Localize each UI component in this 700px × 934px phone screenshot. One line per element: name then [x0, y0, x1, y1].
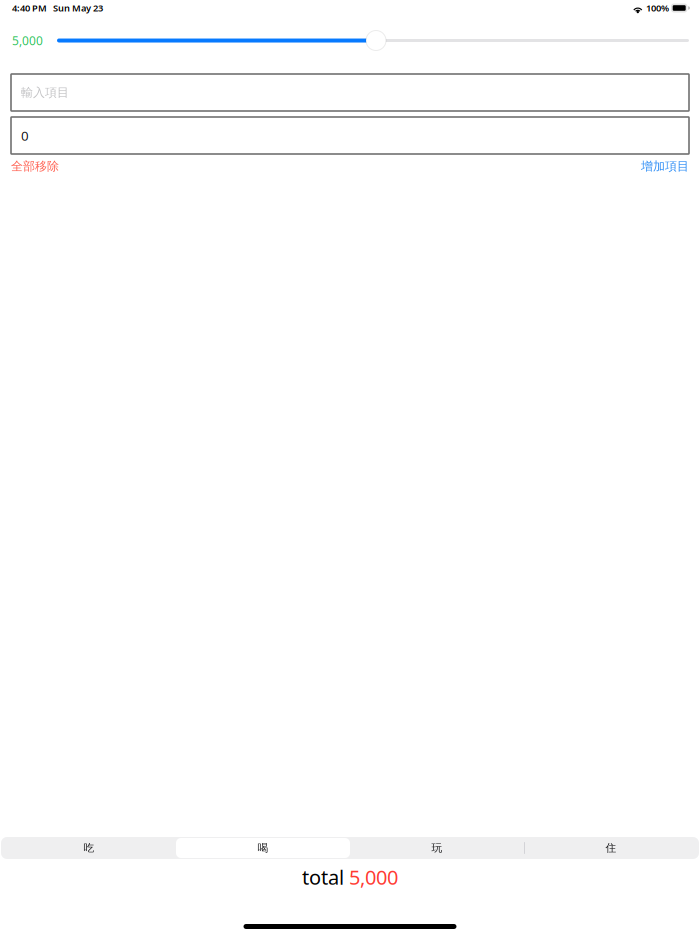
- button[interactable]: 輸入項目: [11, 74, 689, 111]
- staticText: 4:40 PM: [12, 2, 47, 14]
- button[interactable]: 0: [11, 117, 689, 154]
- staticText: 喝: [257, 841, 268, 854]
- staticText: Sun May 23: [53, 2, 103, 14]
- staticText: 5,000: [12, 32, 43, 48]
- staticText: 玩: [431, 841, 442, 854]
- staticText: 0: [21, 127, 29, 144]
- staticText: 5,000: [349, 864, 398, 890]
- staticText: 全部移除: [11, 159, 59, 174]
- staticText: 增加項目: [641, 159, 689, 174]
- button[interactable]: 玩: [350, 838, 524, 858]
- button[interactable]: 全部移除: [11, 159, 59, 174]
- button[interactable]: 增加項目: [641, 159, 689, 174]
- staticText: 輸入項目: [21, 85, 69, 100]
- staticText: total: [302, 864, 344, 890]
- staticText: 100%: [646, 2, 669, 14]
- button[interactable]: 喝: [176, 838, 350, 858]
- button[interactable]: 吃: [2, 838, 176, 858]
- button[interactable]: 住: [524, 838, 698, 858]
- staticText: 住: [605, 841, 616, 854]
- staticText: 吃: [83, 841, 94, 854]
